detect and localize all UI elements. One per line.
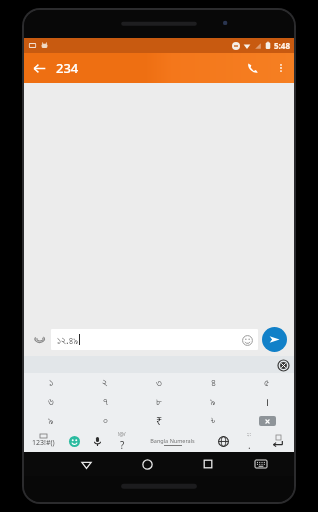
button[interactable]: Close keyboard suggestions [276,358,290,372]
button[interactable]: Backspace [240,411,294,430]
button[interactable]: Home [136,453,158,475]
staticText: ০ [103,415,108,426]
staticText: ₹ [156,413,163,428]
button[interactable]: ৮ [132,392,186,411]
staticText: Bangla Numerals [150,437,195,444]
button[interactable]: ১ [24,373,78,392]
staticText: । [265,394,270,409]
button[interactable]: ৭ [78,392,132,411]
staticText: ৫ [264,377,270,388]
staticText: 234 [56,59,79,77]
button[interactable]: Enter [262,430,294,452]
staticText: ১ [49,377,54,388]
button[interactable]: Emoji [238,331,256,349]
button[interactable]: Emoji keyboard [63,430,86,452]
button[interactable]: ২ [78,373,132,392]
button[interactable]: ০ [78,411,132,430]
button[interactable]: ৫ [240,373,294,392]
button[interactable]: Send [262,327,287,352]
staticText: ? [120,438,125,452]
button[interactable]: ১২.৪৯ [51,329,258,350]
button[interactable]: Bangla Numerals [135,430,210,452]
button[interactable]: ₹ [132,411,186,430]
staticText: 123!#() [32,438,55,448]
button[interactable]: । [240,392,294,411]
staticText: ৳ [211,415,216,426]
button[interactable]: ৳ [186,411,240,430]
button[interactable]: ৩ [132,373,186,392]
button[interactable]: Change language [210,430,236,452]
staticText: ৬ [48,396,54,407]
button[interactable]: ৪ [186,373,240,392]
staticText: ৭ [103,396,108,407]
staticText: ২ [102,377,108,388]
button[interactable]: Voice input [86,430,109,452]
staticText: 5:48 [274,40,290,51]
button[interactable]: ৬ [24,392,78,411]
button[interactable]: Call [238,53,268,83]
button[interactable]: Attach [29,328,51,350]
staticText: ১২.৪৯ [57,333,79,347]
button[interactable]: More options [268,55,294,81]
staticText: :;: [247,431,252,438]
staticText: ৩ [156,377,162,388]
button[interactable]: Back [75,453,97,475]
staticText: ৮ [156,396,163,407]
button[interactable]: Recents [197,453,219,475]
staticText: ৯ [210,396,216,407]
button[interactable]: Switch keyboard [250,453,272,475]
button[interactable]: :;: [236,430,262,452]
button[interactable]: !@/ [109,430,135,452]
staticText: !@/ [118,431,126,438]
staticText: ৯ [48,415,54,426]
staticText: ৪ [211,377,216,388]
button[interactable]: Back [24,53,54,83]
button[interactable]: ৯ [24,411,78,430]
staticText: . [248,438,251,452]
button[interactable]: 123!#() [24,430,63,452]
button[interactable]: ৯ [186,392,240,411]
